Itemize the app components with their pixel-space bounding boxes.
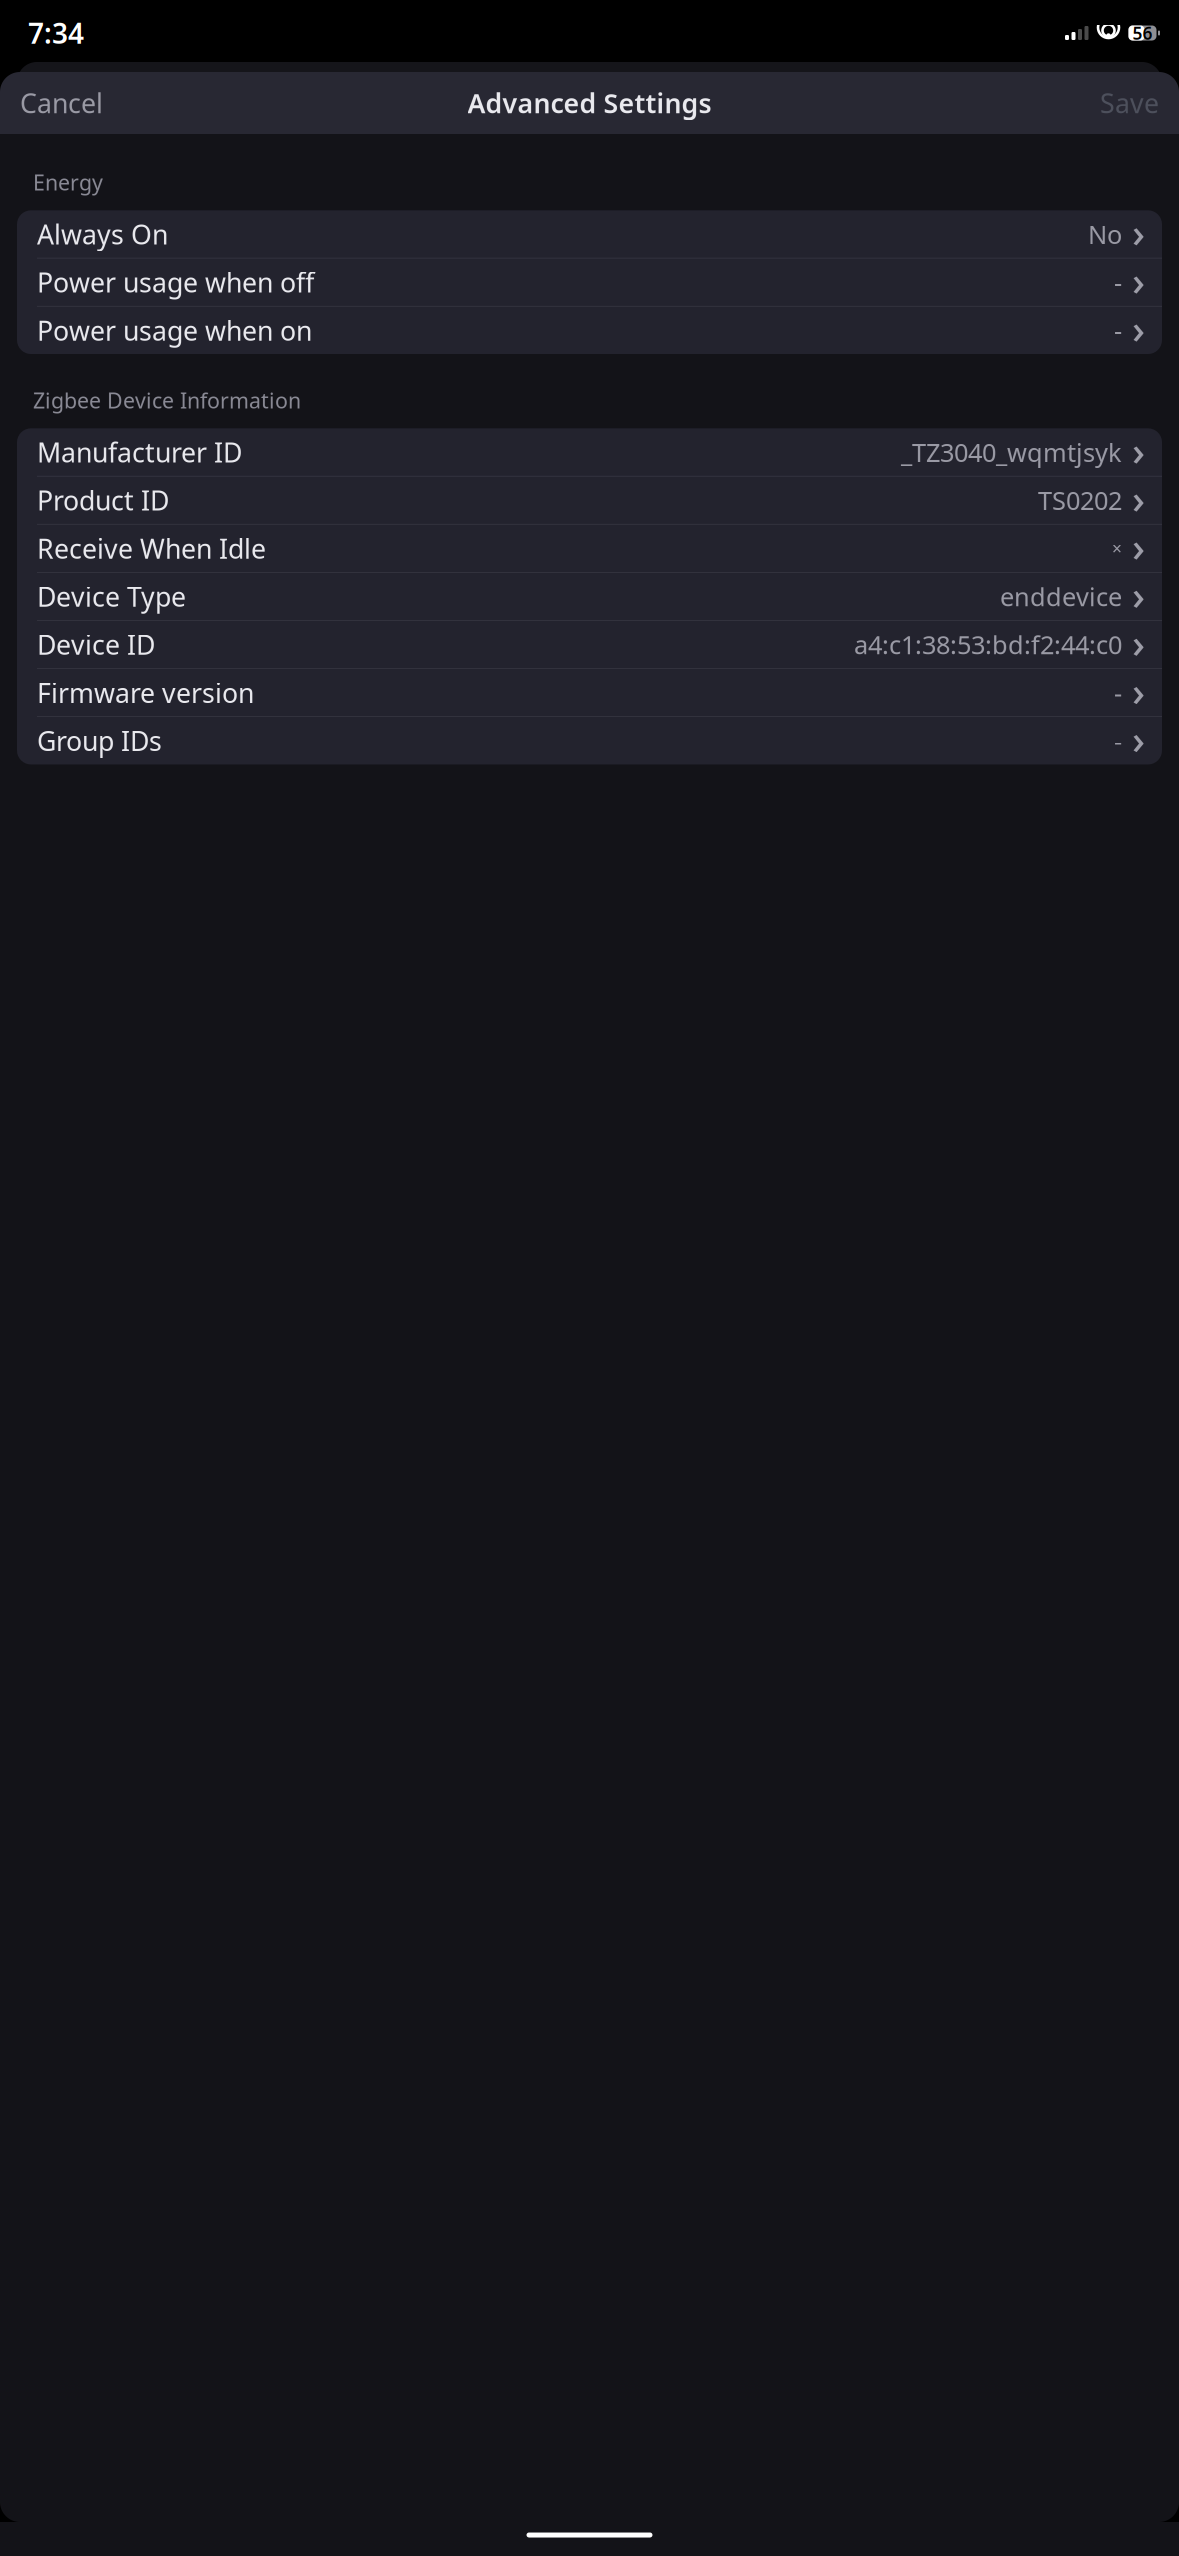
- staticText: -: [1114, 313, 1122, 347]
- button[interactable]: Firmware version: [17, 669, 1162, 717]
- button[interactable]: Manufacturer ID: [17, 428, 1162, 476]
- staticText: Advanced Settings: [467, 85, 711, 121]
- staticText: -: [1114, 265, 1122, 299]
- staticText: Device ID: [37, 627, 155, 662]
- staticText: Save: [1100, 85, 1159, 121]
- staticText: No: [1088, 217, 1122, 251]
- staticText: ›: [1132, 520, 1145, 573]
- staticText: Energy: [33, 168, 103, 196]
- button[interactable]: Product ID: [17, 476, 1162, 525]
- staticText: ›: [1132, 616, 1145, 669]
- staticText: -: [1114, 676, 1122, 709]
- staticText: _TZ3040_wqmtjsyk: [901, 435, 1122, 469]
- staticText: a4:c1:38:53:bd:f2:44:c0: [854, 628, 1122, 661]
- staticText: TS0202: [1038, 483, 1122, 517]
- button[interactable]: Device Type: [17, 573, 1162, 621]
- staticText: ›: [1132, 302, 1145, 355]
- staticText: Always On: [37, 216, 168, 252]
- staticText: enddevice: [1000, 580, 1122, 613]
- button[interactable]: Cancel: [9, 76, 114, 130]
- button[interactable]: Group IDs: [17, 717, 1162, 764]
- staticText: ›: [1132, 424, 1145, 477]
- staticText: ›: [1132, 568, 1145, 621]
- button[interactable]: Power usage when on: [17, 306, 1162, 354]
- staticText: Receive When Idle: [37, 531, 266, 566]
- staticText: Device Type: [37, 579, 186, 614]
- staticText: Product ID: [37, 482, 169, 518]
- staticText: -: [1114, 724, 1122, 757]
- button[interactable]: Device ID: [17, 621, 1162, 669]
- staticText: ›: [1132, 664, 1145, 717]
- button[interactable]: Receive When Idle: [17, 525, 1162, 573]
- staticText: Zigbee Device Information: [33, 386, 301, 414]
- staticText: Manufacturer ID: [37, 434, 242, 470]
- staticText: Cancel: [20, 85, 103, 121]
- button[interactable]: Save: [1089, 76, 1170, 130]
- staticText: Firmware version: [37, 675, 254, 710]
- staticText: ›: [1132, 472, 1145, 525]
- staticText: ›: [1132, 712, 1145, 765]
- staticText: ›: [1132, 205, 1145, 259]
- staticText: 7:34: [28, 14, 84, 52]
- staticText: ›: [1132, 254, 1145, 307]
- staticText: ×: [1112, 537, 1122, 560]
- button[interactable]: Always On: [17, 210, 1162, 258]
- staticText: Group IDs: [37, 723, 162, 758]
- staticText: Power usage when on: [37, 313, 312, 348]
- button[interactable]: Power usage when off: [17, 258, 1162, 306]
- staticText: Power usage when off: [37, 264, 314, 300]
- staticText: 56: [1132, 21, 1152, 44]
